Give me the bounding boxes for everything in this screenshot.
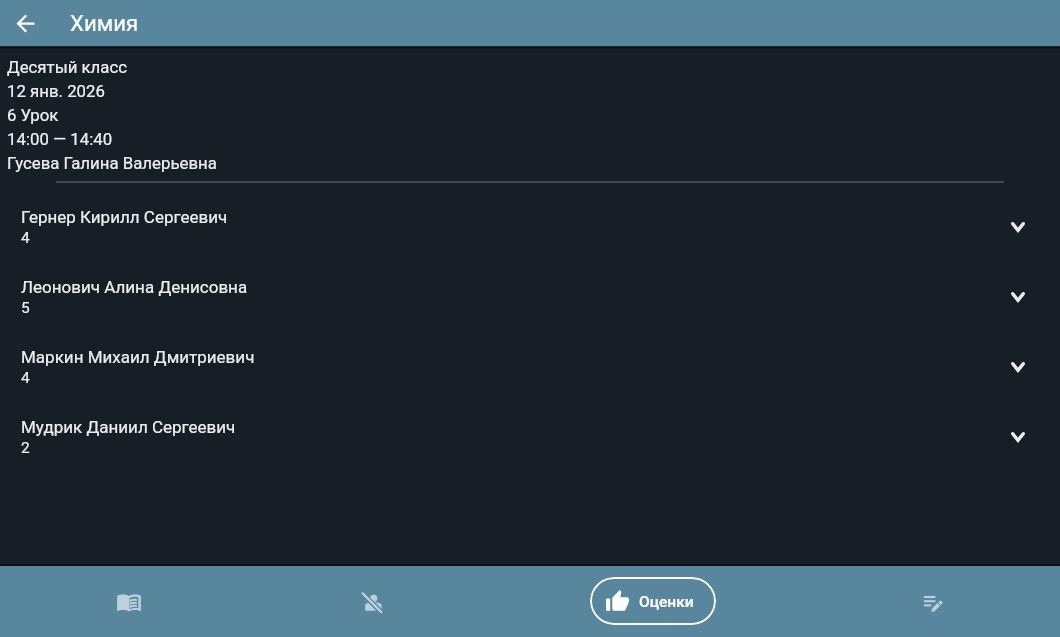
button[interactable]: Маркин Михаил Дмитриевич — [0, 332, 1060, 402]
staticText: Леонович Алина Денисовна — [21, 277, 248, 297]
staticText: 6 Урок — [7, 102, 59, 126]
staticText: Десятый класс — [7, 54, 128, 78]
button[interactable]: Мудрик Даниил Сергеевич — [0, 402, 1060, 472]
button[interactable]: Expand — [1005, 284, 1031, 310]
staticText: 2 — [21, 439, 30, 457]
staticText: 4 — [21, 369, 30, 387]
staticText: Маркин Михаил Дмитриевич — [21, 347, 255, 367]
button[interactable]: Lessons — [95, 566, 163, 637]
staticText: Химия — [70, 10, 139, 36]
staticText: Гусева Галина Валерьевна — [7, 150, 217, 174]
staticText: 14:00 — 14:40 — [7, 126, 113, 150]
button[interactable]: Гернер Кирилл Сергеевич — [0, 192, 1060, 262]
button[interactable]: Expand — [1005, 354, 1031, 380]
staticText: 4 — [21, 229, 30, 247]
button[interactable]: Expand — [1005, 424, 1031, 450]
button[interactable]: Absent — [338, 566, 406, 637]
staticText: 5 — [21, 299, 30, 317]
button[interactable]: Оценки — [590, 577, 716, 625]
staticText: Мудрик Даниил Сергеевич — [21, 417, 236, 437]
staticText: Гернер Кирилл Сергеевич — [21, 207, 228, 227]
staticText: Оценки — [639, 593, 694, 611]
button[interactable]: Expand — [1005, 214, 1031, 240]
button[interactable]: Back — [5, 3, 45, 43]
button[interactable]: Леонович Алина Денисовна — [0, 262, 1060, 332]
button[interactable]: Notes — [899, 566, 967, 637]
staticText: 12 янв. 2026 — [7, 78, 105, 102]
